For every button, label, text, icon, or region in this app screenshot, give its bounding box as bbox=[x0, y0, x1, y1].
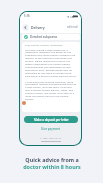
button[interactable]: edit mail bbox=[67, 25, 78, 29]
staticText: 5:16 bbox=[24, 14, 30, 18]
button[interactable]: Give payment bbox=[20, 126, 81, 131]
staticText: Give payment bbox=[41, 127, 61, 131]
staticText: Detailed subpoena bbox=[30, 35, 57, 39]
staticText: Delivery bbox=[31, 25, 45, 30]
staticText: A fully electronic practice backstop, th… bbox=[25, 80, 77, 101]
staticText: 1 - 866 - 070 - 0110 bbox=[40, 136, 62, 139]
staticText: FAQ: Conflict Analysis Notification bbox=[25, 43, 63, 46]
staticText: doctor within 8 hours bbox=[23, 163, 81, 170]
staticText: We have noticed a new request for a noti… bbox=[25, 48, 77, 78]
staticText: Make a deposit per letter bbox=[34, 118, 69, 122]
button[interactable]: Back bbox=[22, 24, 29, 31]
button[interactable]: Make a deposit per letter bbox=[24, 116, 78, 123]
staticText: Quick advice from a bbox=[25, 156, 79, 163]
